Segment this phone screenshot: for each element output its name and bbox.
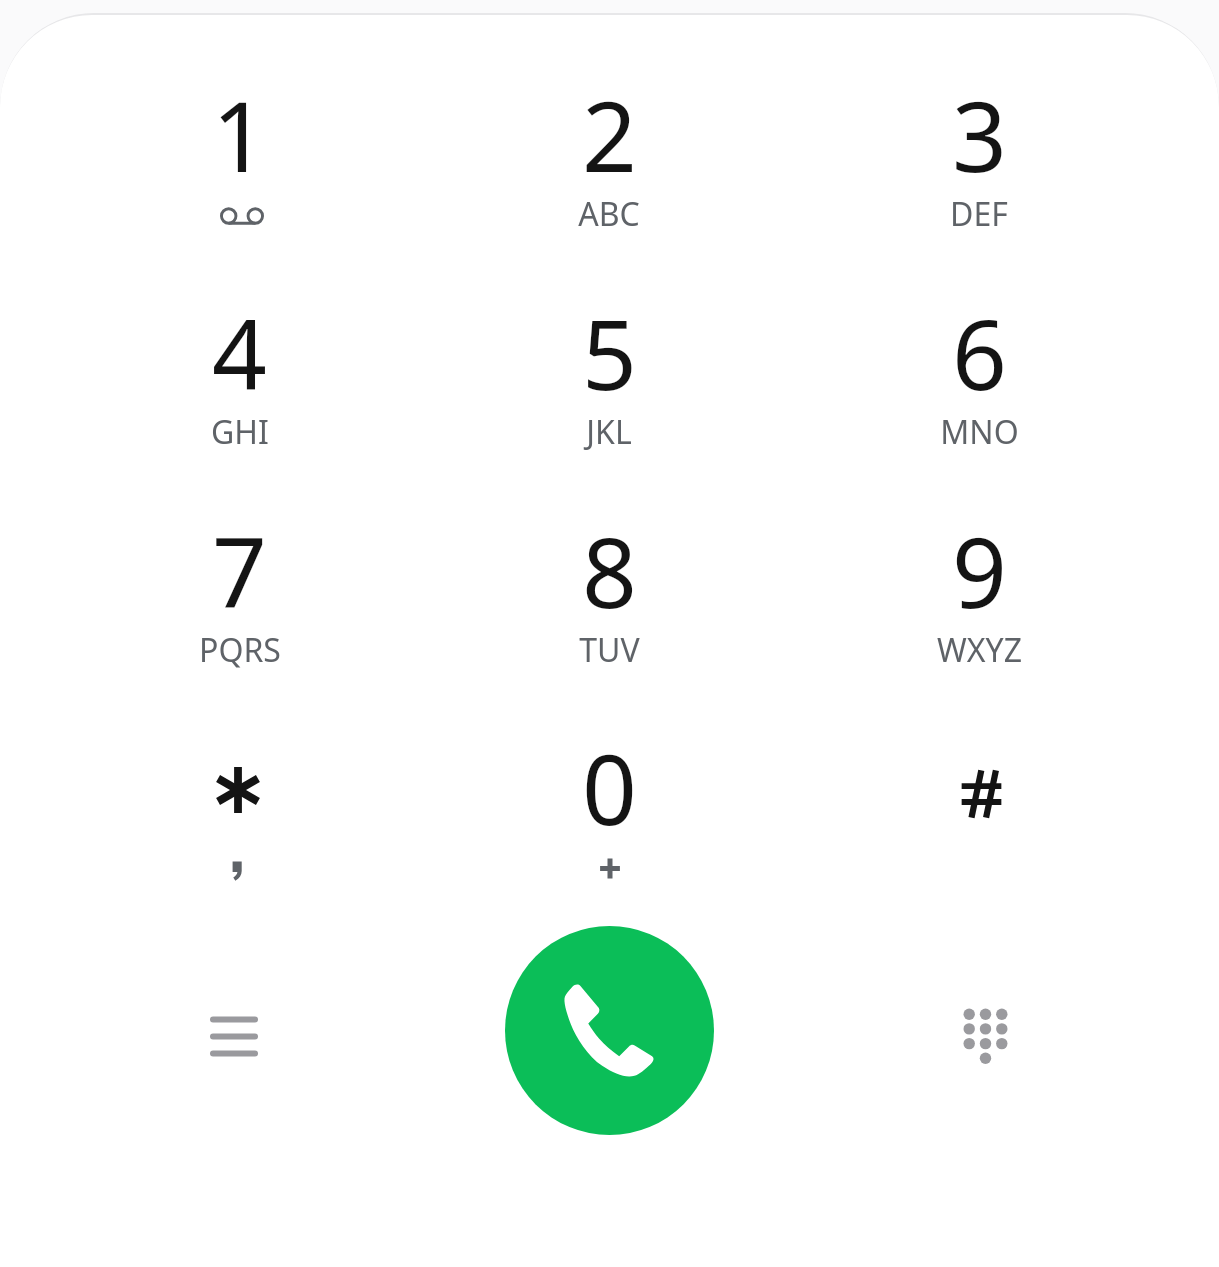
staticText: DEF (950, 192, 1008, 236)
staticText: JKL (586, 410, 632, 454)
staticText: PQRS (199, 628, 281, 672)
staticText: WXYZ (937, 628, 1022, 672)
button[interactable]: Dialpad (797, 915, 1173, 1145)
staticText: GHI (211, 410, 269, 454)
staticText: 8 (582, 505, 637, 636)
button[interactable]: 8 TUV (424, 464, 794, 682)
button[interactable]: 6 MNO (794, 246, 1164, 464)
button[interactable]: 9 WXYZ (794, 464, 1164, 682)
button[interactable]: Pound (794, 681, 1164, 899)
button[interactable]: 7 PQRS (55, 464, 424, 682)
staticText: 9 (952, 505, 1007, 636)
button[interactable]: 3 DEF (794, 28, 1164, 246)
staticText: 1 (212, 69, 267, 200)
button[interactable]: 0 + (424, 681, 794, 899)
staticText: 7 (212, 505, 267, 636)
button[interactable]: Call (505, 926, 714, 1135)
button[interactable]: 5 JKL (424, 246, 794, 464)
staticText: 5 (582, 287, 637, 418)
staticText: ABC (578, 192, 640, 236)
button[interactable]: 2 ABC (424, 28, 794, 246)
staticText: 0 (582, 722, 637, 853)
button[interactable]: 1 voicemail (55, 28, 424, 246)
button[interactable]: 4 GHI (55, 246, 424, 464)
staticText: TUV (579, 628, 640, 672)
staticText: 4 (212, 287, 267, 418)
button[interactable]: Star (55, 681, 424, 899)
staticText: 3 (952, 69, 1007, 200)
staticText: 6 (952, 287, 1007, 418)
staticText: MNO (940, 410, 1019, 454)
button[interactable]: Menu (46, 915, 421, 1145)
staticText: 2 (582, 69, 637, 200)
